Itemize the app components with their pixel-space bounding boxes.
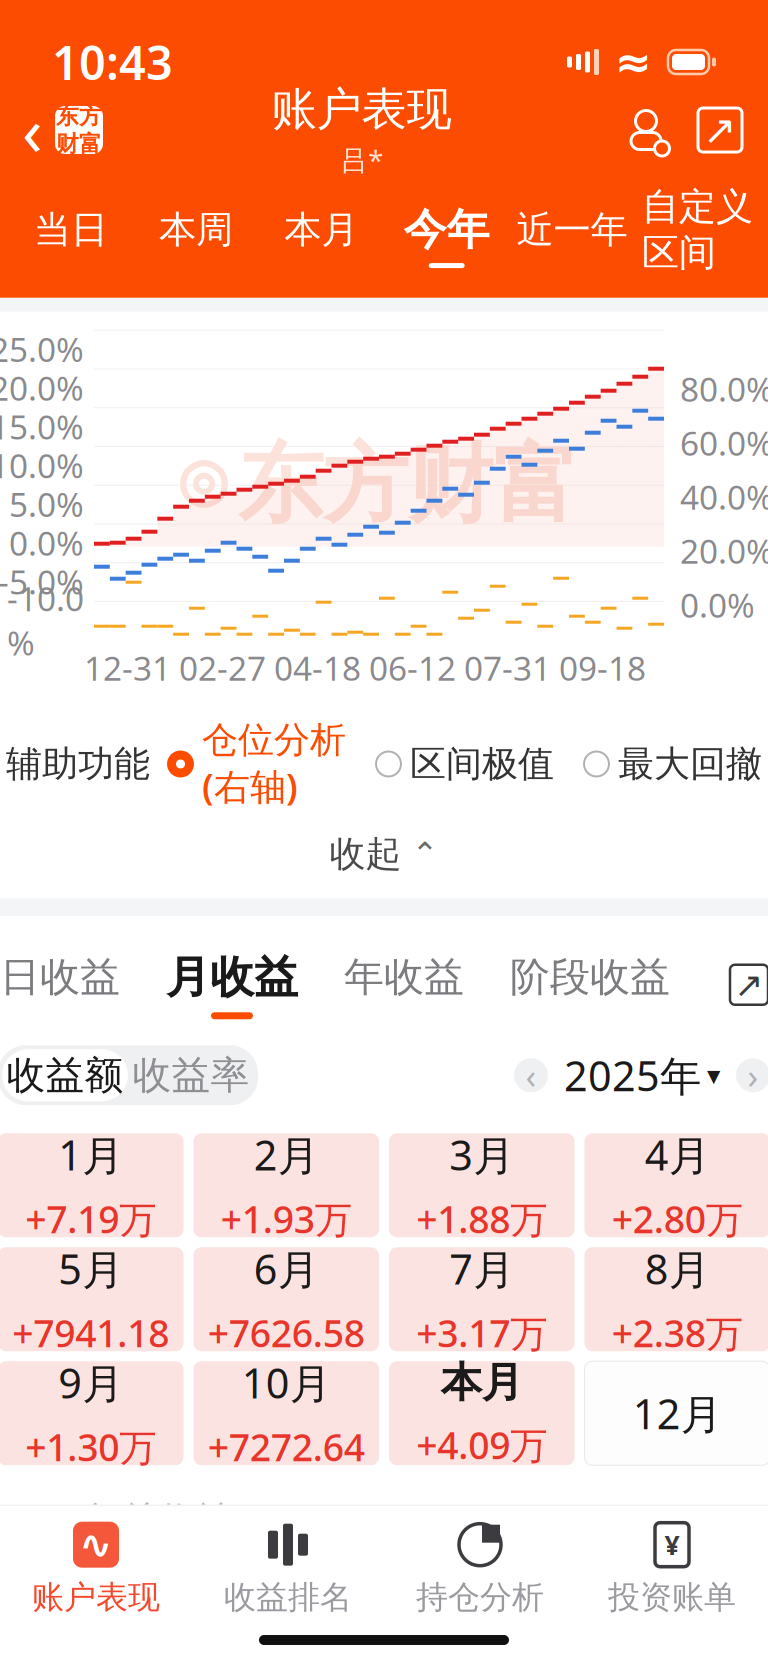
button[interactable]: 仓位分析(右轴)	[168, 718, 346, 810]
staticText: ≈	[615, 37, 652, 87]
button[interactable]: 9月	[0, 1361, 183, 1465]
staticText: 0.0%	[680, 583, 755, 627]
staticText: 日收益	[0, 953, 120, 1002]
staticText: 持仓分析	[416, 1578, 544, 1617]
staticText: 40.0%	[680, 475, 768, 519]
staticText: ↗	[703, 107, 737, 153]
button[interactable]: 2月	[193, 1133, 379, 1237]
staticText: 2025年总收益:	[0, 1494, 252, 1543]
staticText: -5.0%	[0, 559, 84, 604]
button[interactable]: 5月	[0, 1247, 183, 1351]
button[interactable]: 返回	[0, 78, 103, 182]
staticText: 20.0%	[0, 366, 84, 410]
staticText: 东方	[56, 102, 102, 130]
button[interactable]: 10月	[193, 1361, 379, 1465]
button[interactable]: 年收益	[344, 953, 464, 1017]
staticText: +1.93万	[221, 1194, 352, 1243]
staticText: 当日	[34, 207, 108, 253]
staticText: ⌾	[180, 439, 228, 530]
staticText: ↗	[734, 965, 763, 1004]
staticText: 5月	[58, 1241, 123, 1296]
staticText: 收益排名	[224, 1578, 352, 1617]
staticText: 15.0%	[0, 404, 84, 449]
button[interactable]: 上一年	[514, 1058, 548, 1092]
staticText: 辅助功能	[6, 742, 150, 786]
staticText: 自定义区间	[642, 184, 753, 276]
staticText: 收益额	[6, 1051, 123, 1099]
staticText: 财富	[56, 130, 102, 158]
button[interactable]: ∿	[0, 1522, 192, 1617]
button[interactable]: 收益率	[128, 1049, 254, 1101]
staticText: ›	[747, 1052, 758, 1098]
button[interactable]: ¥	[576, 1522, 768, 1617]
button[interactable]: 持仓分析	[384, 1522, 576, 1617]
button[interactable]: 收益排名	[192, 1522, 384, 1617]
staticText: +3.17万	[416, 1308, 547, 1357]
staticText: 7月	[449, 1241, 514, 1296]
button[interactable]: 4月	[584, 1133, 768, 1237]
button[interactable]: 最大回撤	[584, 742, 762, 786]
staticText: 9月	[58, 1355, 123, 1410]
staticText: 2025年	[564, 1048, 701, 1103]
button[interactable]: 近一年	[509, 207, 635, 265]
staticText: +4.09万	[416, 1420, 547, 1469]
staticText: 仓位分析(右轴)	[202, 718, 346, 810]
staticText: 80.0%	[680, 367, 768, 411]
staticText: 近一年	[516, 207, 627, 253]
staticText: 07-31	[464, 646, 551, 690]
staticText: 本月	[441, 1357, 523, 1408]
button[interactable]: 账户信息	[620, 104, 672, 156]
staticText: 年收益	[344, 953, 464, 1002]
staticText: 本周	[159, 207, 233, 253]
button[interactable]: 本周	[133, 207, 259, 265]
button[interactable]: 月收益	[166, 950, 298, 1019]
button[interactable]: 日收益	[0, 953, 120, 1017]
staticText: ‹	[525, 1052, 536, 1098]
button[interactable]: 分享	[698, 108, 742, 152]
staticText: 8月	[645, 1241, 710, 1296]
staticText: 账户表现	[32, 1578, 160, 1617]
staticText: 区间极值	[410, 742, 554, 786]
button[interactable]: 3月	[389, 1133, 574, 1237]
staticText: +2.80万	[612, 1194, 743, 1243]
button[interactable]: 1月	[0, 1133, 183, 1237]
staticText: 3月	[449, 1127, 514, 1182]
staticText: +2.38万	[612, 1308, 743, 1357]
staticText: +270282.98	[252, 1491, 479, 1546]
staticText: 10月	[242, 1355, 331, 1410]
staticText: 5.0%	[9, 482, 84, 526]
staticText: 10:43	[52, 31, 173, 93]
button[interactable]: 7月	[389, 1247, 574, 1351]
button[interactable]: 12月	[584, 1361, 768, 1465]
staticText: 收益率	[132, 1051, 249, 1099]
button[interactable]: 区间极值	[376, 742, 554, 786]
button[interactable]: 8月	[584, 1247, 768, 1351]
button[interactable]: 2025年	[564, 1048, 720, 1103]
staticText: 04-18	[274, 646, 361, 690]
staticText: 最大回撤	[618, 742, 762, 786]
staticText: 今年	[404, 204, 490, 256]
button[interactable]: 阶段收益	[510, 953, 670, 1017]
button[interactable]: 今年	[384, 204, 509, 268]
staticText: +7.19万	[25, 1194, 156, 1243]
button[interactable]: 自定义区间	[635, 184, 760, 288]
button[interactable]: 本月	[389, 1361, 574, 1465]
staticText: 4月	[645, 1127, 710, 1182]
staticText: 阶段收益	[510, 953, 670, 1002]
button[interactable]: 6月	[193, 1247, 379, 1351]
button[interactable]: 分享收益	[730, 965, 768, 1005]
staticText: ⌃	[411, 836, 438, 872]
button[interactable]: 收起	[0, 810, 768, 898]
staticText: 0.0%	[9, 521, 84, 565]
button[interactable]: 收益额	[2, 1049, 128, 1101]
button[interactable]: 下一年	[736, 1058, 768, 1092]
staticText: 月收益	[166, 950, 298, 1004]
button[interactable]: 当日	[8, 207, 133, 265]
staticText: 20.0%	[680, 529, 768, 573]
button[interactable]: 本月	[259, 207, 384, 265]
staticText: +1.88万	[416, 1194, 547, 1243]
staticText: 投资账单	[608, 1578, 736, 1617]
staticText: 10.0%	[0, 443, 84, 487]
staticText: 本月	[284, 207, 358, 253]
staticText: ‹	[22, 86, 43, 174]
